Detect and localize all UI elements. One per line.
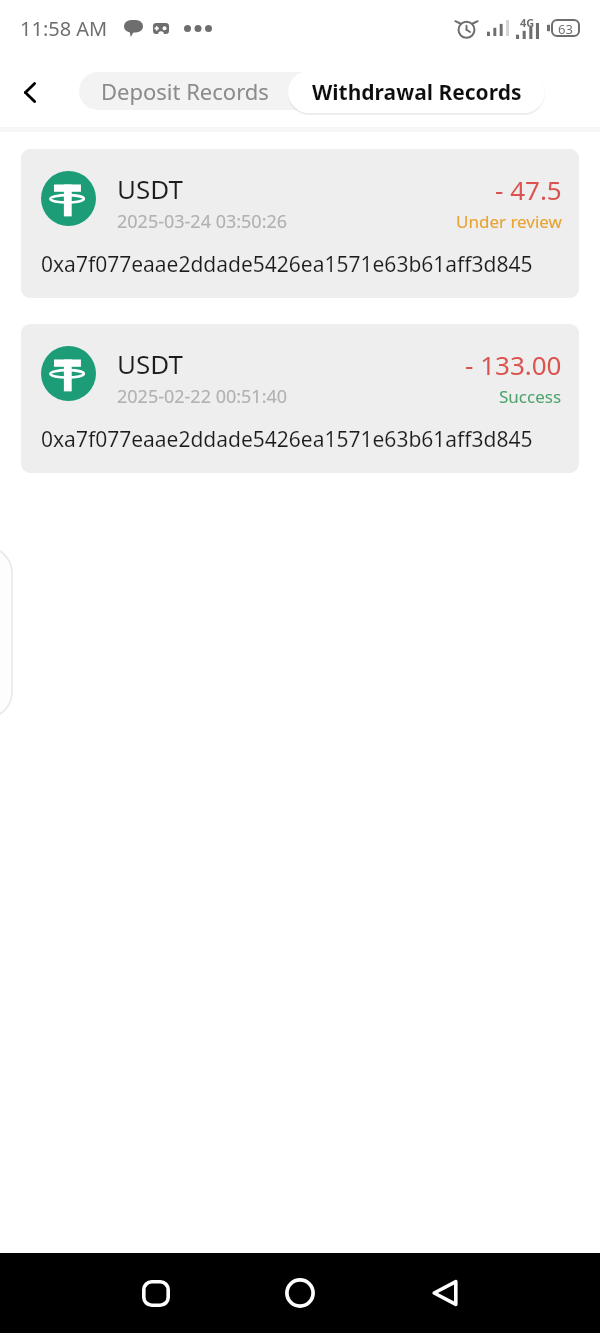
staticText: Withdrawal Records: [312, 78, 522, 107]
staticText: 63: [558, 20, 573, 36]
button[interactable]: Back: [6, 68, 54, 116]
staticText: 0xa7f077eaae2ddade5426ea1571e63b61aff3d8…: [41, 425, 533, 454]
staticText: USDT: [117, 171, 183, 206]
button[interactable]: Floating panel: [0, 547, 12, 718]
button[interactable]: USDT: [21, 149, 579, 298]
staticText: 11:58 AM: [20, 15, 108, 42]
staticText: 2025-03-24 03:50:26: [117, 209, 288, 234]
button[interactable]: Home: [270, 1263, 330, 1323]
button[interactable]: Deposit Records: [79, 72, 290, 110]
staticText: USDT: [117, 346, 183, 381]
staticText: Deposit Records: [101, 76, 269, 106]
button[interactable]: Withdrawal Records: [288, 71, 545, 113]
staticText: 0xa7f077eaae2ddade5426ea1571e63b61aff3d8…: [41, 250, 533, 279]
staticText: - 47.5: [495, 172, 562, 207]
staticText: Success: [499, 385, 562, 408]
staticText: - 133.00: [465, 347, 562, 382]
staticText: 2025-02-22 00:51:40: [117, 384, 288, 409]
button[interactable]: Recents: [126, 1263, 186, 1323]
button[interactable]: Back: [415, 1263, 475, 1323]
staticText: 4G: [520, 15, 535, 30]
staticText: Under review: [456, 210, 562, 233]
button[interactable]: USDT: [21, 324, 579, 473]
